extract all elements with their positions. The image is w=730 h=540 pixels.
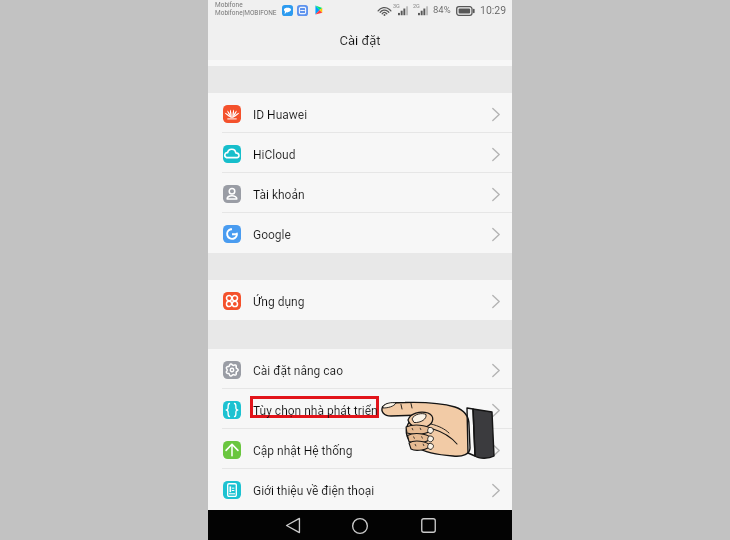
button[interactable]: Giới thiệu về điện thoại — [208, 469, 512, 509]
staticText: Ứng dụng — [253, 295, 305, 309]
button[interactable]: Google — [208, 213, 512, 253]
staticText: 84% — [433, 4, 451, 15]
staticText: Mobifone — [215, 1, 243, 9]
button[interactable]: Cài đặt nâng cao — [208, 349, 512, 389]
staticText: 10:29 — [480, 4, 507, 16]
button[interactable]: Recent apps — [414, 513, 442, 538]
button[interactable]: Tài khoản — [208, 173, 512, 213]
button[interactable]: HiCloud — [208, 133, 512, 173]
staticText: ID Huawei — [253, 108, 308, 122]
button[interactable]: Tùy chọn nhà phát triển — [208, 389, 512, 429]
button[interactable]: Back — [279, 513, 307, 538]
staticText: Cài đặt — [339, 33, 381, 48]
staticText: HiCloud — [253, 148, 296, 162]
staticText: Tùy chọn nhà phát triển — [253, 404, 378, 418]
staticText: Cài đặt nâng cao — [253, 364, 343, 378]
button[interactable]: Ứng dụng — [208, 280, 512, 320]
staticText: Mobifone|MOBIFONE — [215, 9, 277, 17]
staticText: 3G — [393, 3, 400, 9]
staticText: Cập nhật Hệ thống — [253, 444, 353, 458]
button[interactable]: ID Huawei — [208, 93, 512, 133]
button[interactable]: Home — [346, 513, 374, 538]
staticText: Google — [253, 228, 291, 242]
staticText: Tài khoản — [253, 188, 305, 202]
staticText: Giới thiệu về điện thoại — [253, 484, 375, 498]
button[interactable]: Cập nhật Hệ thống — [208, 429, 512, 469]
staticText: 2G — [413, 3, 420, 9]
